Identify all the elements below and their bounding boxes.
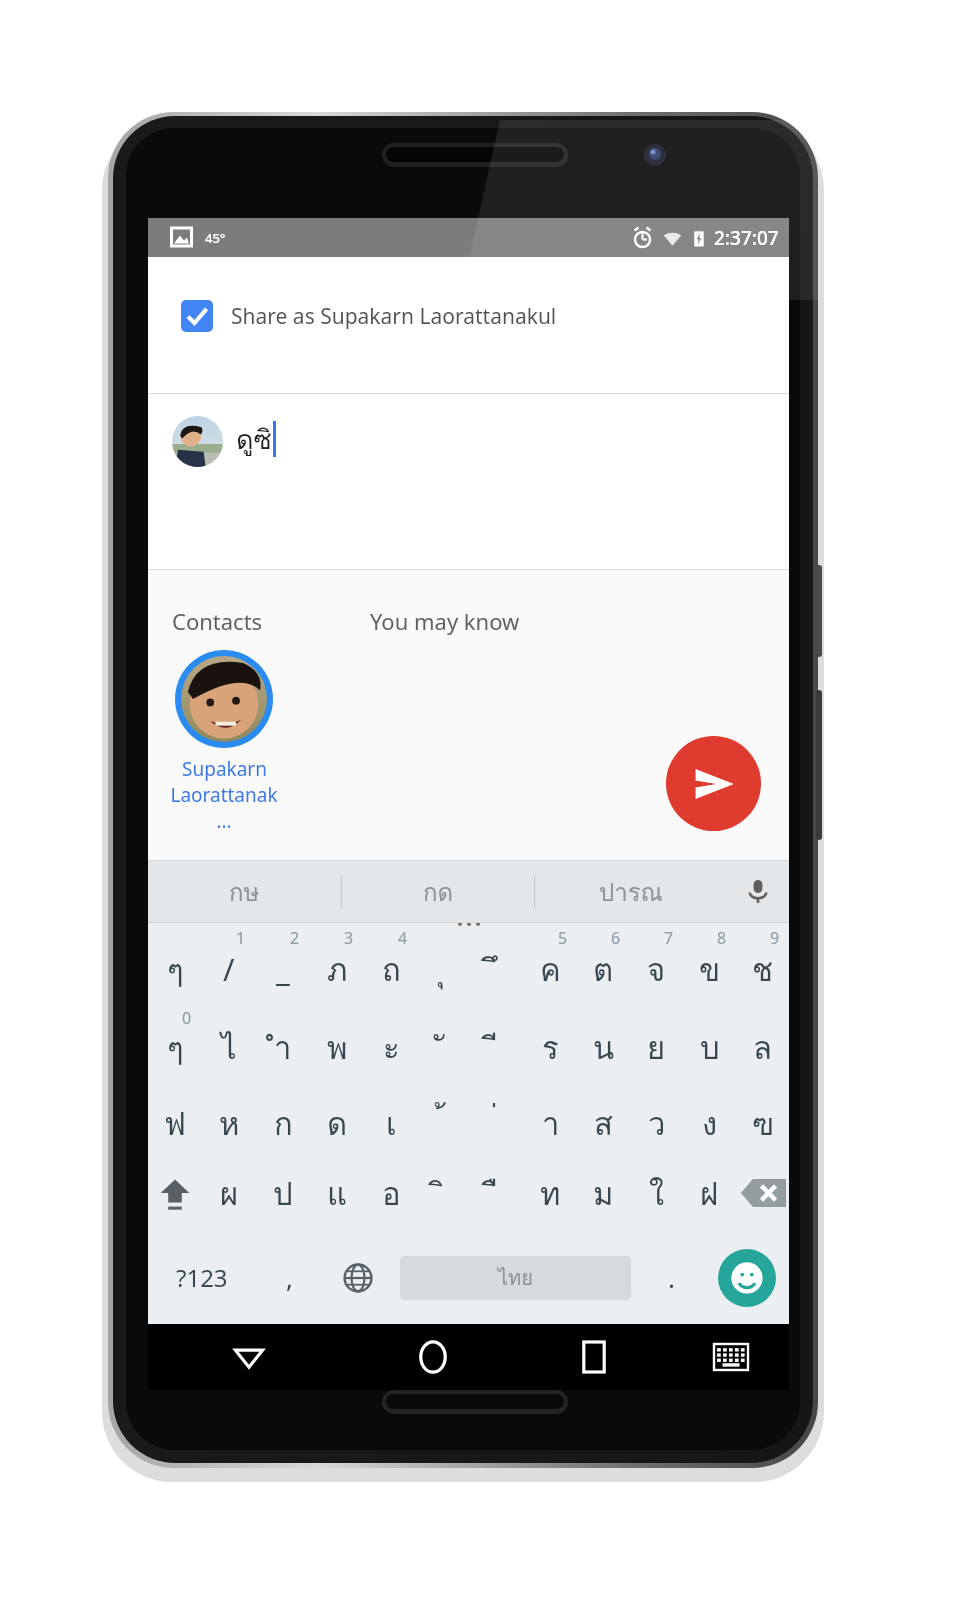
staticText: บ — [700, 1023, 720, 1072]
button[interactable]: 7 — [630, 923, 683, 1003]
button[interactable]: ้ — [418, 1079, 471, 1155]
button[interactable]: ท — [524, 1155, 577, 1231]
button[interactable]: พ — [310, 1003, 364, 1079]
staticText: 6 — [611, 927, 621, 949]
button[interactable]: 6 — [577, 923, 630, 1003]
button[interactable]: ำ — [256, 1003, 310, 1079]
staticText: 5 — [558, 927, 568, 949]
button[interactable]: ฃ — [736, 1079, 789, 1155]
button[interactable]: 5 — [524, 923, 577, 1003]
button[interactable]: 8 — [683, 923, 736, 1003]
button[interactable]: ุ — [418, 923, 471, 1003]
button[interactable]: ฝ — [683, 1155, 736, 1231]
button[interactable]: น — [577, 1003, 630, 1079]
button[interactable]: กษ — [148, 861, 341, 922]
staticText: 8 — [717, 927, 727, 949]
button[interactable]: า — [524, 1079, 577, 1155]
staticText: แ — [327, 1169, 347, 1218]
button[interactable]: ่ — [471, 1079, 524, 1155]
button[interactable]: Send — [666, 736, 761, 831]
button[interactable]: ล — [736, 1003, 789, 1079]
button[interactable]: ึ — [471, 923, 524, 1003]
button[interactable]: ปารณ — [535, 861, 727, 922]
button[interactable]: ?123 — [148, 1231, 256, 1324]
staticText: 2 — [290, 927, 300, 949]
staticText: 0 — [182, 1007, 192, 1029]
button[interactable]: ไทย — [400, 1256, 631, 1300]
staticText: ภ — [327, 945, 348, 994]
staticText: ง — [702, 1099, 718, 1148]
staticText: / — [223, 948, 235, 990]
staticText: Contacts — [172, 606, 263, 636]
button[interactable]: ว — [630, 1079, 683, 1155]
button[interactable]: ิ — [418, 1155, 471, 1231]
button[interactable]: ผ — [202, 1155, 256, 1231]
staticText: _ — [276, 948, 290, 990]
staticText: ไ — [221, 1023, 237, 1072]
button[interactable]: Emoji — [705, 1231, 789, 1324]
button[interactable]: Recent apps — [515, 1324, 672, 1390]
button[interactable]: 9 — [736, 923, 789, 1003]
staticText: จ — [647, 945, 666, 994]
staticText: 2:37:07 — [714, 225, 779, 251]
staticText: . — [668, 1260, 675, 1295]
button[interactable]: ม — [577, 1155, 630, 1231]
button[interactable]: Change language — [322, 1231, 394, 1324]
button[interactable]: ไ — [202, 1003, 256, 1079]
button[interactable]: 1 — [202, 923, 256, 1003]
staticText: ร — [542, 1023, 559, 1072]
button[interactable]: Voice input — [727, 861, 789, 922]
button[interactable]: Shift — [148, 1155, 202, 1231]
button[interactable]: Share as Supakarn Laorattanakul — [148, 257, 789, 357]
button[interactable]: ื — [471, 1155, 524, 1231]
staticText: พ — [327, 1023, 348, 1072]
button[interactable]: Home — [350, 1324, 515, 1390]
button[interactable]: Back — [148, 1324, 350, 1390]
button[interactable]: ง — [683, 1079, 736, 1155]
button[interactable]: บ — [683, 1003, 736, 1079]
button[interactable]: ๆ — [148, 923, 202, 1003]
staticText: ถ — [382, 945, 401, 994]
staticText: ย — [647, 1023, 666, 1072]
button[interactable]: เ — [364, 1079, 418, 1155]
staticText: 1 — [236, 927, 246, 949]
staticText: ม — [593, 1169, 614, 1218]
staticText: ก — [274, 1099, 293, 1148]
button[interactable]: Backspace — [736, 1155, 789, 1231]
staticText: Supakarn — [182, 756, 267, 782]
button[interactable]: ะ — [364, 1003, 418, 1079]
staticText: กษ — [229, 873, 260, 911]
button[interactable]: 4 — [364, 923, 418, 1003]
button[interactable]: ั — [418, 1003, 471, 1079]
button[interactable]: ร — [524, 1003, 577, 1079]
button[interactable]: แ — [310, 1155, 364, 1231]
button[interactable]: ี — [471, 1003, 524, 1079]
button[interactable]: ก — [256, 1079, 310, 1155]
button[interactable]: 2 — [256, 923, 310, 1003]
button[interactable]: Period — [637, 1231, 705, 1324]
button[interactable]: ย — [630, 1003, 683, 1079]
button[interactable]: กด — [342, 861, 534, 922]
button[interactable]: ดูซิ — [148, 394, 789, 570]
button[interactable]: 0 — [148, 1003, 202, 1079]
staticText: ฝ — [700, 1169, 719, 1218]
staticText: ช — [752, 945, 774, 994]
staticText: 4 — [398, 927, 408, 949]
button[interactable]: ส — [577, 1079, 630, 1155]
button[interactable]: ห — [202, 1079, 256, 1155]
button[interactable]: Switch keyboard — [672, 1324, 789, 1390]
button[interactable]: Comma — [256, 1231, 322, 1324]
button[interactable]: ฟ — [148, 1079, 202, 1155]
staticText: ไทย — [498, 1262, 533, 1294]
button[interactable]: Supakarn — [164, 650, 284, 834]
staticText: ห — [219, 1099, 240, 1148]
staticText: ท — [540, 1169, 561, 1218]
staticText: ว — [648, 1099, 666, 1148]
button[interactable]: ใ — [630, 1155, 683, 1231]
staticText: ล — [753, 1023, 772, 1072]
staticText: ๆ — [167, 945, 184, 994]
button[interactable]: ด — [310, 1079, 364, 1155]
button[interactable]: 3 — [310, 923, 364, 1003]
button[interactable]: อ — [364, 1155, 418, 1231]
button[interactable]: ป — [256, 1155, 310, 1231]
